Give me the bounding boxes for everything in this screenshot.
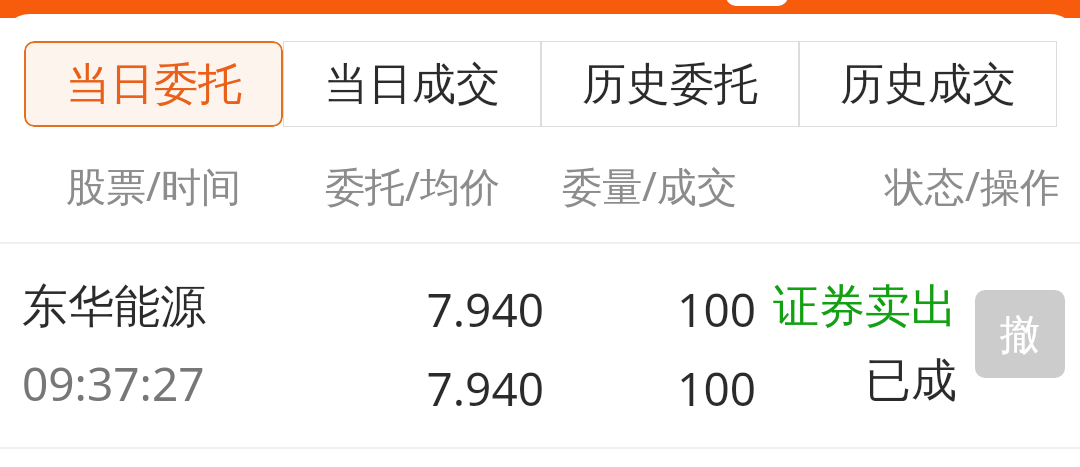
staticText: 状态/操作 [762,158,1060,213]
staticText: 委托/均价 [325,158,562,213]
staticText: 委量/成交 [562,158,762,213]
staticText: 撤 [1000,309,1040,359]
button[interactable]: 东华能源 [0,244,1080,449]
staticText: 7.940 [342,357,544,420]
staticText: 东华能源 [22,278,342,336]
staticText: 股票/时间 [66,158,325,213]
button[interactable]: 当日委托 [24,41,283,127]
button[interactable]: 历史成交 [799,41,1057,127]
staticText: 09:37:27 [22,352,342,415]
staticText: 7.940 [342,278,544,341]
staticText: 证券卖出 [756,278,957,336]
staticText: 当日成交 [324,57,500,112]
button[interactable]: 历史委托 [541,41,799,127]
staticText: 历史成交 [840,57,1016,112]
staticText: 已成 [756,352,957,410]
staticText: 当日委托 [66,57,242,112]
button[interactable]: 撤单 [975,290,1065,378]
staticText: 历史委托 [582,57,758,112]
staticText: 100 [544,357,756,420]
staticText: 100 [544,278,756,341]
button[interactable]: 当日成交 [283,41,541,127]
